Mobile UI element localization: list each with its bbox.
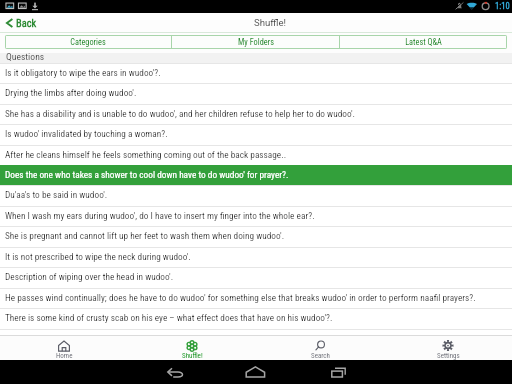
button[interactable]: Is it essential to wash the hands when d…	[0, 329, 512, 335]
staticText: My Folders	[238, 37, 274, 47]
staticText: Is it obligatory to wipe the ears in wud…	[5, 67, 161, 78]
button[interactable]: She has a disability and is unable to do…	[0, 104, 512, 124]
button[interactable]: There is some kind of crusty scab on his…	[0, 308, 512, 328]
staticText: Does the one who takes a shower to cool …	[5, 169, 289, 180]
button[interactable]: Du'aa's to be said in wudoo'.	[0, 185, 512, 205]
button[interactable]: Description of wiping over the head in w…	[0, 267, 512, 287]
button[interactable]: Home	[241, 360, 270, 384]
button[interactable]: Home	[0, 336, 128, 360]
button[interactable]: After he cleans himself he feels somethi…	[0, 145, 512, 165]
staticText: She is pregnant and cannot lift up her f…	[5, 230, 285, 241]
button[interactable]: Drying the limbs after doing wudoo'.	[0, 83, 512, 103]
staticText: Is wudoo' invalidated by touching a woma…	[5, 128, 168, 139]
staticText: She has a disability and is unable to do…	[5, 108, 356, 119]
staticText: Search	[311, 352, 330, 360]
button[interactable]: Is wudoo' invalidated by touching a woma…	[0, 124, 512, 144]
button[interactable]: Shuffle!	[128, 336, 256, 360]
staticText: Drying the limbs after doing wudoo'.	[5, 87, 137, 98]
button[interactable]: It is not prescribed to wipe the neck du…	[0, 247, 512, 267]
staticText: Categories	[70, 37, 106, 47]
staticText: When I wash my ears during wudoo', do I …	[5, 210, 315, 221]
button[interactable]: Search	[256, 336, 384, 360]
staticText: After he cleans himself he feels somethi…	[5, 149, 287, 160]
button[interactable]: Settings	[384, 336, 512, 360]
button[interactable]: He passes wind continually; does he have…	[0, 288, 512, 308]
button[interactable]: Latest Q&A	[340, 35, 507, 49]
button[interactable]: Does the one who takes a shower to cool …	[0, 165, 512, 185]
staticText: Shuffle!	[182, 352, 203, 360]
button[interactable]: Back	[160, 360, 189, 384]
staticText: Questions	[6, 51, 45, 61]
button[interactable]: My Folders	[172, 35, 339, 49]
staticText: Shuffle!	[254, 17, 287, 28]
button[interactable]: When I wash my ears during wudoo', do I …	[0, 206, 512, 226]
button[interactable]: Is it obligatory to wipe the ears in wud…	[0, 63, 512, 83]
staticText: Back	[16, 17, 37, 29]
staticText: Settings	[437, 352, 460, 360]
staticText: Home	[56, 352, 73, 360]
staticText: Du'aa's to be said in wudoo'.	[5, 189, 108, 200]
button[interactable]: Recent apps	[323, 360, 352, 384]
staticText: It is not prescribed to wipe the neck du…	[5, 251, 191, 262]
button[interactable]: She is pregnant and cannot lift up her f…	[0, 226, 512, 246]
button[interactable]: Categories	[5, 35, 171, 49]
staticText: Latest Q&A	[405, 37, 442, 47]
staticText: Description of wiping over the head in w…	[5, 271, 174, 282]
staticText: There is some kind of crusty scab on his…	[5, 312, 333, 323]
staticText: 1:10	[495, 1, 510, 11]
button[interactable]: Back	[6, 17, 37, 29]
staticText: He passes wind continually; does he have…	[5, 292, 476, 303]
